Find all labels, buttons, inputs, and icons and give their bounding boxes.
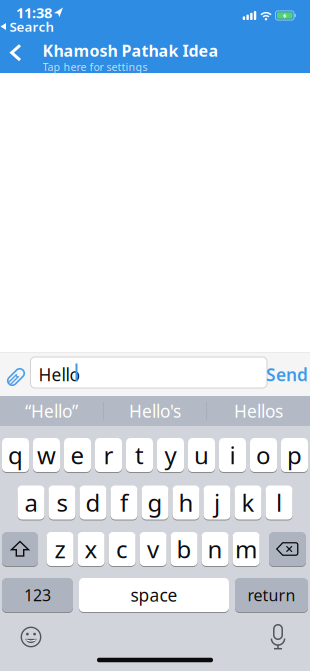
staticText: q [8, 439, 23, 471]
button[interactable]: w [33, 438, 60, 472]
staticText: n [208, 533, 223, 565]
staticText: e [70, 439, 84, 471]
staticText: “Hello” [25, 399, 78, 422]
button[interactable]: n [202, 532, 229, 566]
staticText: c [116, 533, 128, 565]
button[interactable]: z [47, 532, 74, 566]
staticText: j [214, 487, 220, 518]
staticText: i [229, 439, 235, 471]
button[interactable]: h [172, 485, 199, 519]
staticText: d [85, 487, 100, 518]
staticText: g [147, 487, 162, 518]
button[interactable]: Hellos [207, 396, 310, 426]
button[interactable]: o [250, 438, 277, 472]
button[interactable]: p [281, 438, 308, 472]
staticText: Hellos [234, 399, 283, 422]
staticText: space [130, 583, 177, 606]
button[interactable]: l [265, 485, 292, 519]
button[interactable]: Hello's [104, 396, 206, 426]
button[interactable]: space [79, 578, 229, 612]
button[interactable]: v [140, 532, 167, 566]
button[interactable]: Hello [30, 357, 267, 388]
staticText: Send [266, 363, 308, 386]
button[interactable]: Dictate [269, 626, 287, 650]
button[interactable]: Search [0, 18, 54, 35]
staticText: b [177, 533, 192, 565]
button[interactable]: e [64, 438, 91, 472]
button[interactable]: c [109, 532, 136, 566]
button[interactable]: y [157, 438, 184, 472]
button[interactable]: t [126, 438, 153, 472]
button[interactable]: d [79, 485, 106, 519]
staticText: Tap here for settings [42, 60, 147, 74]
button[interactable]: Emoji [20, 626, 41, 647]
button[interactable]: return [235, 578, 308, 612]
button[interactable]: g [141, 485, 168, 519]
button[interactable]: x [78, 532, 105, 566]
staticText: w [37, 439, 56, 471]
button[interactable]: r [95, 438, 122, 472]
staticText: 123 [24, 584, 51, 606]
staticText: f [120, 487, 128, 518]
staticText: h [178, 487, 193, 518]
staticText: 11:38 [16, 3, 52, 22]
button[interactable]: j [203, 485, 230, 519]
button[interactable]: 123 [2, 578, 73, 612]
staticText: return [247, 584, 295, 606]
staticText: Hello's [129, 399, 181, 422]
button[interactable]: s [48, 485, 75, 519]
staticText: t [135, 439, 144, 471]
staticText: x [85, 533, 98, 565]
button[interactable]: a [17, 485, 44, 519]
staticText: s [56, 487, 67, 518]
staticText: m [235, 533, 257, 565]
staticText: y [164, 439, 176, 471]
button[interactable]: Send [266, 363, 308, 386]
button[interactable]: k [234, 485, 261, 519]
button[interactable]: Back [4, 38, 28, 68]
staticText: p [287, 439, 302, 471]
button[interactable]: i [219, 438, 246, 472]
button[interactable]: f [110, 485, 137, 519]
staticText: Search [9, 18, 54, 35]
staticText: u [194, 439, 209, 471]
staticText: o [256, 439, 271, 471]
staticText: r [103, 439, 113, 471]
staticText: k [241, 487, 254, 518]
button[interactable]: “Hello” [0, 396, 103, 426]
button[interactable]: b [171, 532, 198, 566]
button[interactable]: u [188, 438, 215, 472]
staticText: v [147, 533, 159, 565]
staticText: a [24, 487, 37, 518]
staticText: l [276, 487, 282, 518]
button[interactable]: Shift [2, 532, 38, 566]
button[interactable]: q [2, 438, 29, 472]
button[interactable]: Delete [269, 532, 306, 566]
button[interactable]: Khamosh Pathak Idea [42, 40, 218, 74]
staticText: Khamosh Pathak Idea [42, 40, 218, 61]
staticText: z [55, 533, 66, 565]
button[interactable]: Attach [3, 364, 29, 390]
button[interactable]: m [233, 532, 260, 566]
staticText: Hello [38, 363, 79, 386]
